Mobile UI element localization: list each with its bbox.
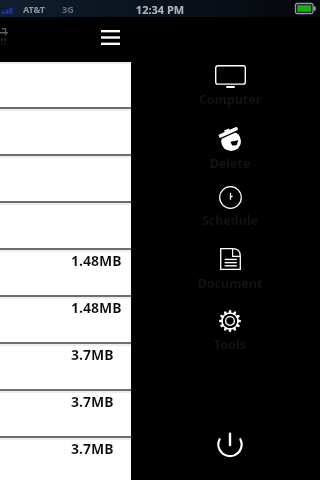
staticText: AT&T bbox=[23, 3, 46, 15]
button[interactable]: 1.48MB bbox=[0, 297, 131, 344]
button[interactable]: Delete bbox=[193, 124, 267, 169]
button[interactable]: 1.48MB bbox=[0, 250, 131, 297]
button[interactable] bbox=[0, 109, 131, 156]
staticText: Computer bbox=[193, 91, 267, 108]
button[interactable]: Schedule bbox=[193, 182, 267, 226]
button[interactable] bbox=[0, 156, 131, 203]
staticText: Document bbox=[193, 275, 267, 292]
button[interactable]: 3.7MB bbox=[0, 344, 131, 391]
staticText: 3.7MB bbox=[71, 392, 114, 411]
button[interactable] bbox=[0, 62, 131, 109]
staticText: 1.48MB bbox=[71, 298, 122, 317]
button[interactable]: Back bbox=[0, 26, 16, 48]
staticText: Tools bbox=[193, 336, 267, 353]
button[interactable]: Tools bbox=[193, 306, 267, 350]
button[interactable]: 3.7MB bbox=[0, 391, 131, 438]
staticText: Schedule bbox=[193, 212, 267, 229]
button[interactable] bbox=[0, 203, 131, 250]
button[interactable]: Computer bbox=[193, 61, 267, 105]
button[interactable]: Power bbox=[215, 431, 245, 457]
staticText: 3.7MB bbox=[71, 439, 114, 458]
staticText: 3.7MB bbox=[71, 345, 114, 364]
button[interactable]: Menu bbox=[94, 21, 127, 53]
button[interactable]: 3.7MB bbox=[0, 438, 131, 480]
button[interactable]: Document bbox=[193, 244, 267, 289]
staticText: 3G bbox=[62, 3, 74, 15]
staticText: 1.48MB bbox=[71, 251, 122, 270]
staticText: Delete bbox=[193, 155, 267, 172]
staticText: 12:34 PM bbox=[0, 2, 320, 17]
